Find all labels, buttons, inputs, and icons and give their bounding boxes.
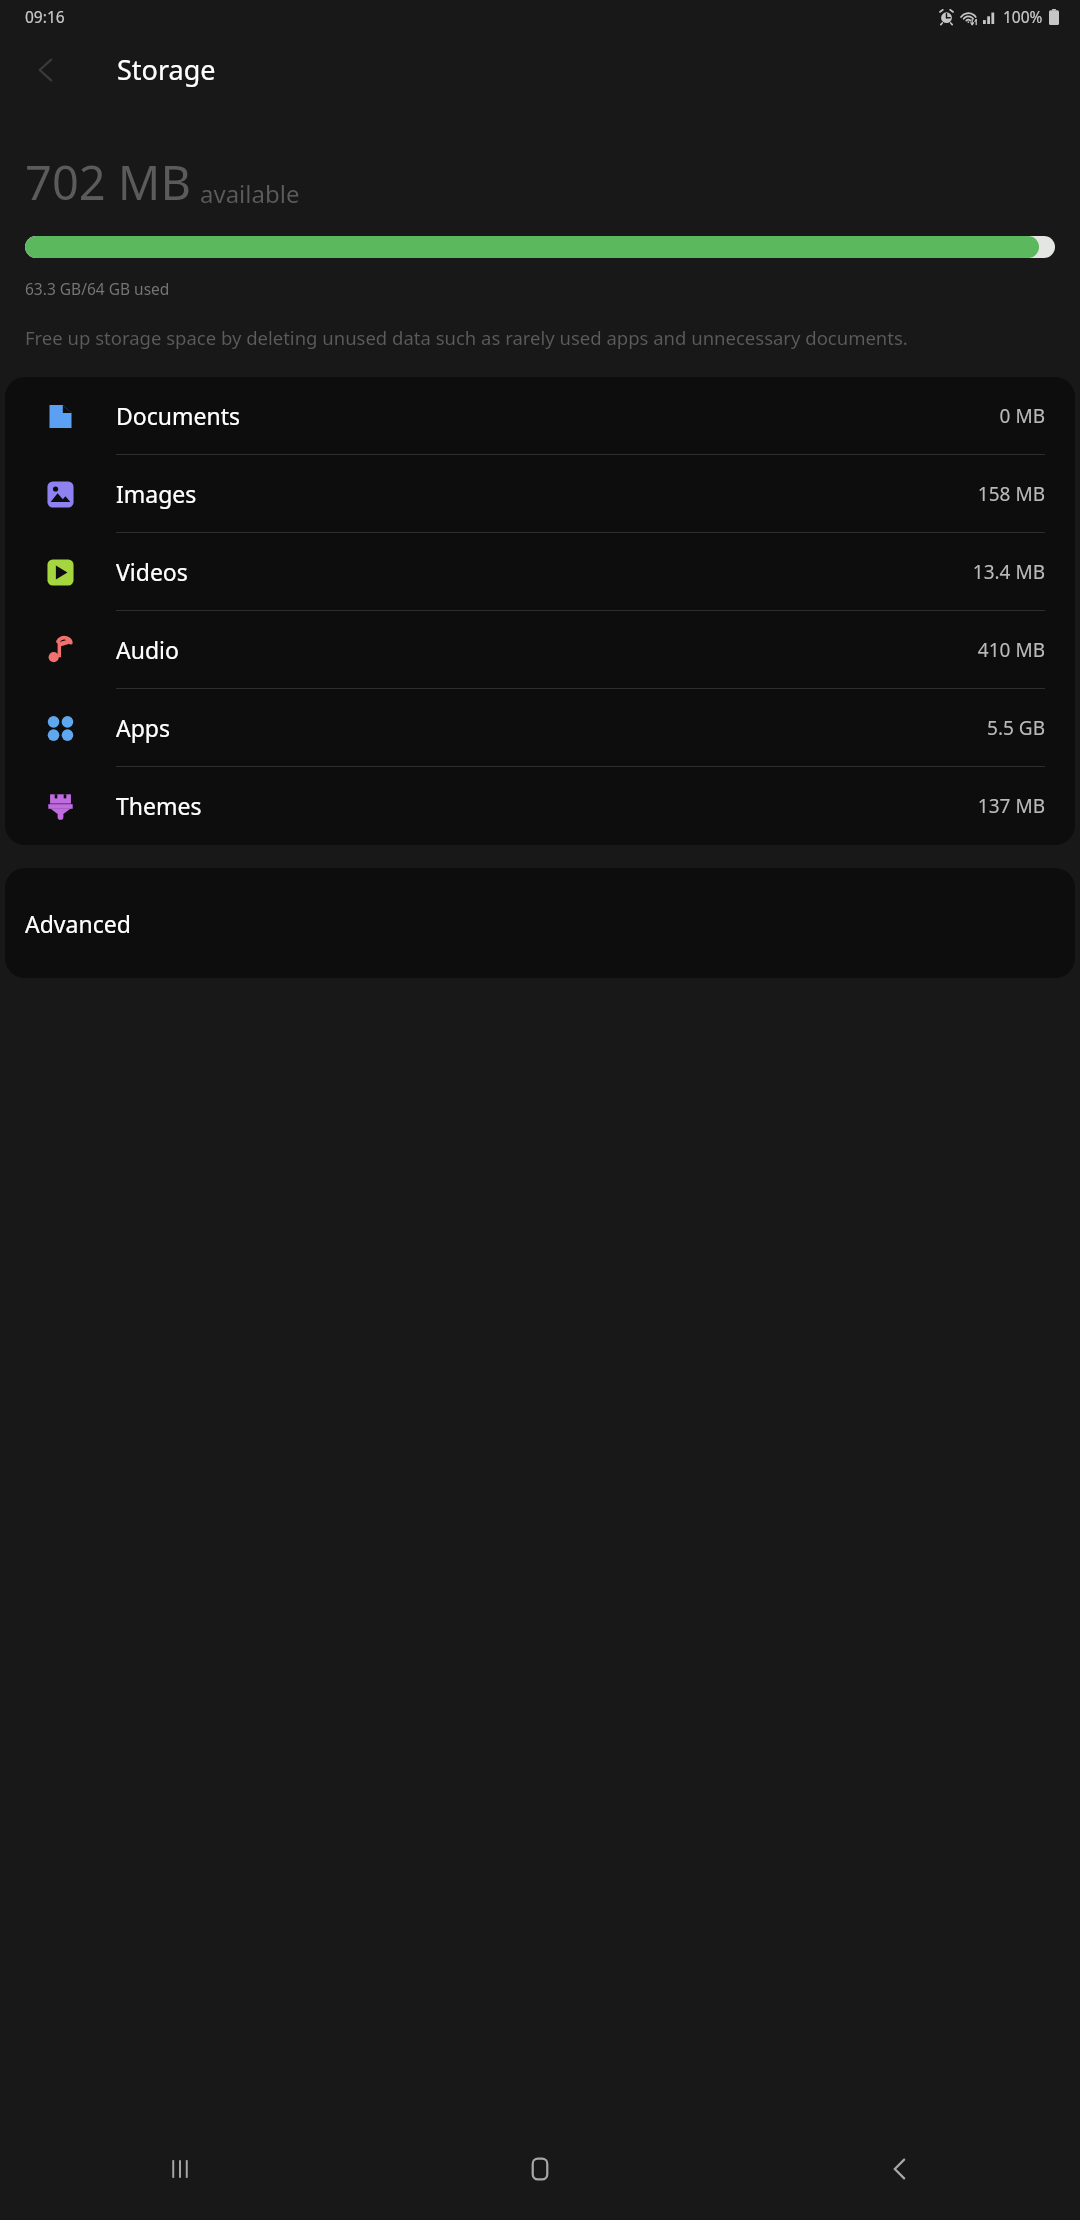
staticText: 702 MB — [25, 150, 192, 214]
staticText: Documents — [116, 400, 240, 431]
button[interactable]: Back — [14, 38, 78, 102]
staticText: Videos — [116, 556, 188, 587]
button[interactable]: Videos — [5, 533, 1075, 611]
button[interactable]: Home — [360, 2118, 720, 2220]
staticText: Free up storage space by deleting unused… — [25, 325, 908, 350]
button[interactable]: Audio — [5, 611, 1075, 689]
staticText: 5.5 GB — [987, 715, 1045, 741]
staticText: available — [200, 177, 300, 210]
button[interactable]: Apps — [5, 689, 1075, 767]
button[interactable]: Themes — [5, 767, 1075, 845]
button[interactable]: Advanced — [5, 868, 1075, 978]
staticText: Themes — [116, 790, 202, 821]
button[interactable]: Back — [720, 2118, 1080, 2220]
staticText: 100% — [1003, 6, 1043, 27]
button[interactable]: Images — [5, 455, 1075, 533]
staticText: 0 MB — [999, 403, 1045, 429]
button[interactable]: Recents — [0, 2118, 360, 2220]
staticText: 13.4 MB — [972, 559, 1045, 585]
staticText: 09:16 — [25, 6, 65, 27]
staticText: Apps — [116, 712, 171, 743]
staticText: Advanced — [25, 908, 131, 939]
staticText: 63.3 GB/64 GB used — [25, 278, 170, 299]
button[interactable]: Documents — [5, 377, 1075, 455]
staticText: Images — [116, 478, 197, 509]
staticText: 410 MB — [977, 637, 1045, 663]
staticText: Audio — [116, 634, 179, 665]
staticText: 137 MB — [977, 793, 1045, 819]
staticText: 158 MB — [977, 481, 1045, 507]
staticText: Storage — [117, 51, 216, 88]
